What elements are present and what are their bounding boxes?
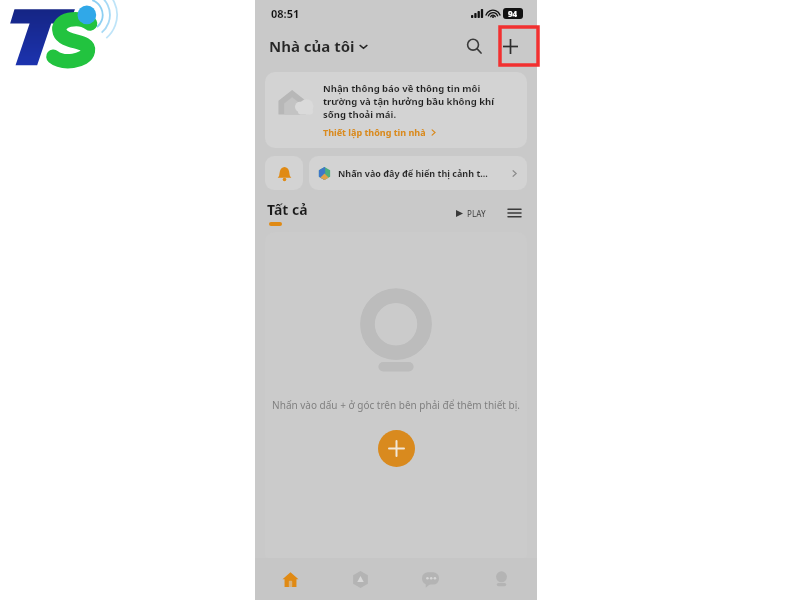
staticText: Nhận thông báo về thông tin môi trường v…: [323, 82, 515, 121]
button[interactable]: Nhận thông báo về thông tin môi trường v…: [265, 72, 527, 148]
button[interactable]: Thiết lập thông tin nhà: [323, 126, 437, 138]
button[interactable]: Home: [255, 558, 325, 600]
button[interactable]: Devices: [325, 558, 395, 600]
button[interactable]: Tất cả: [267, 200, 308, 226]
staticText: 08:51: [271, 6, 300, 21]
button[interactable]: Nhấn vào đây để hiển thị cảnh t...: [309, 156, 527, 190]
button[interactable]: Chat: [395, 558, 466, 600]
staticText: Thiết lập thông tin nhà: [323, 126, 426, 138]
staticText: Nhấn vào đây để hiển thị cảnh t...: [338, 167, 507, 179]
button[interactable]: Nhà của tôi: [269, 36, 368, 56]
button[interactable]: Add device: [493, 29, 527, 63]
staticText: 94: [508, 8, 518, 19]
staticText: PLAY: [467, 208, 486, 219]
button[interactable]: Search: [457, 29, 491, 63]
staticText: Nhà của tôi: [269, 36, 355, 56]
button[interactable]: Add device: [378, 430, 415, 467]
button[interactable]: PLAY: [449, 205, 493, 222]
button[interactable]: Menu: [503, 202, 525, 224]
staticText: Nhấn vào dấu + ở góc trên bên phải để th…: [271, 398, 521, 412]
button[interactable]: Profile: [466, 558, 537, 600]
button[interactable]: Notifications: [265, 156, 303, 190]
staticText: Tất cả: [267, 200, 308, 219]
